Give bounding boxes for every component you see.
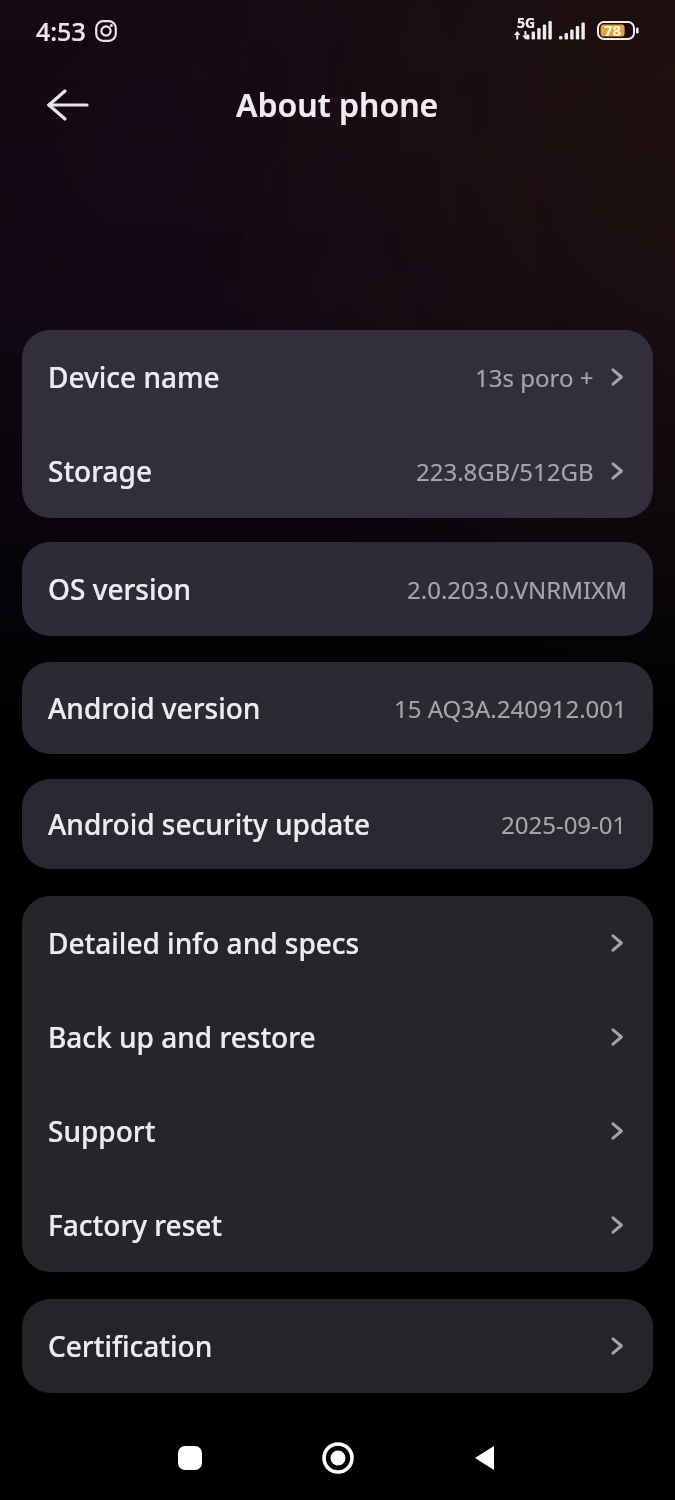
button[interactable] [170,1438,210,1478]
button[interactable]: Detailed info and specs [22,896,653,990]
button[interactable] [318,1438,358,1478]
staticText: OS version [48,570,192,608]
staticText: About phone [236,83,439,127]
staticText: Android version [48,689,261,727]
staticText: Certification [48,1327,213,1365]
staticText: 4:53 [36,14,86,48]
staticText: 5G [517,13,536,32]
staticText: 223.8GB/512GB [416,455,594,488]
button[interactable]: Storage [22,424,653,518]
button[interactable]: Support [22,1084,653,1178]
button[interactable]: Back up and restore [22,990,653,1084]
staticText: Storage [48,452,152,490]
button[interactable] [466,1438,506,1478]
button[interactable]: Device name [22,330,653,424]
staticText: 2.0.203.0.VNRMIXM [407,573,627,606]
button[interactable]: Android security update [22,779,653,869]
staticText: Factory reset [48,1206,223,1244]
button[interactable]: OS version [22,542,653,636]
staticText: Android security update [48,805,371,843]
staticText: 15 AQ3A.240912.001 [394,692,627,725]
staticText: 2025-09-01 [501,808,627,841]
staticText: 13s poro + [475,361,594,394]
staticText: Device name [48,358,220,396]
staticText: Detailed info and specs [48,924,360,962]
staticText: Support [48,1112,156,1150]
button[interactable]: Factory reset [22,1178,653,1272]
staticText: Back up and restore [48,1018,316,1056]
button[interactable] [48,90,88,120]
staticText: 78 [604,20,622,40]
button[interactable]: Android version [22,662,653,754]
button[interactable]: Certification [22,1299,653,1393]
